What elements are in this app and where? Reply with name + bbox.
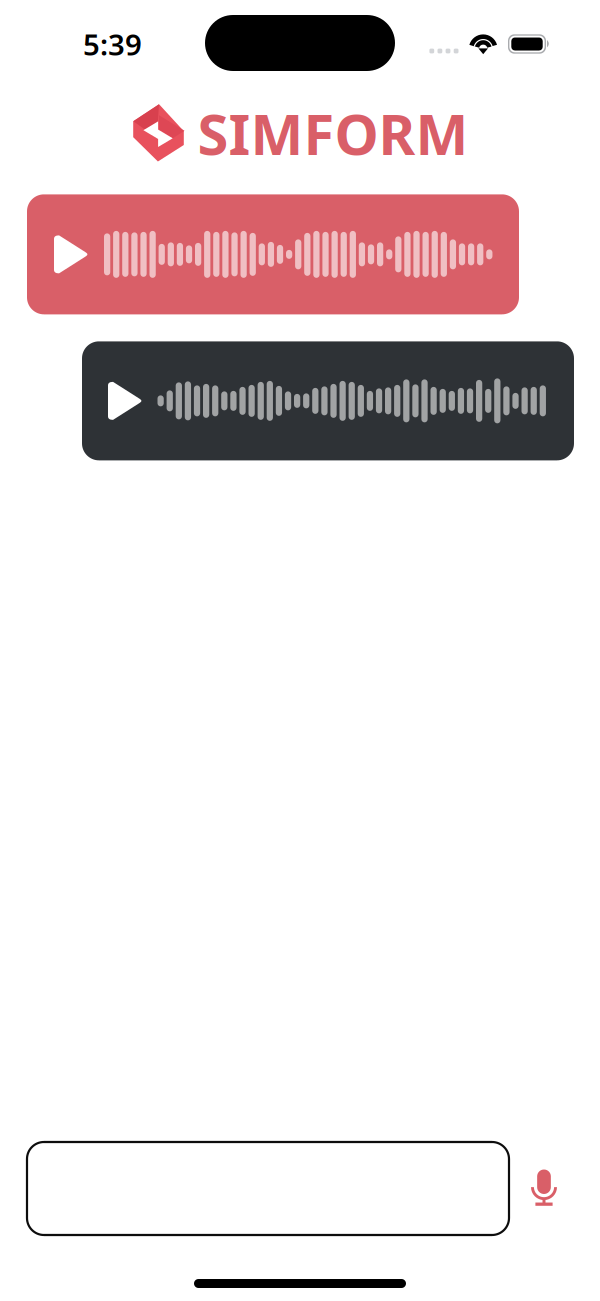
button[interactable]: Record voice message bbox=[515, 1142, 573, 1235]
staticText: SIMFORM bbox=[197, 96, 468, 170]
button[interactable]: Play voice message bbox=[27, 194, 519, 314]
button[interactable]: Play voice message bbox=[82, 341, 574, 460]
button[interactable]: Message field bbox=[27, 1142, 509, 1235]
staticText: 5:39 bbox=[83, 24, 142, 63]
